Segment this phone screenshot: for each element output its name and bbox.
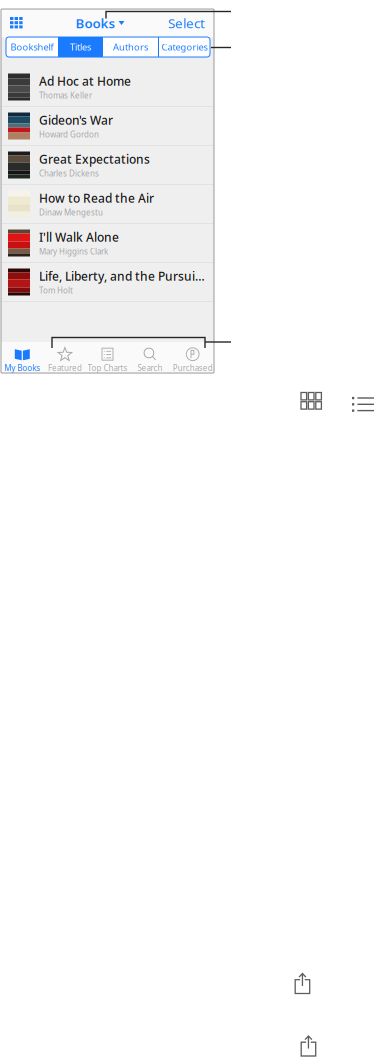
staticText: Life, Liberty, and the Pursuit of Happin… bbox=[39, 268, 206, 284]
button[interactable]: Shelf view bbox=[1, 12, 32, 34]
staticText: Mary Higgins Clark bbox=[39, 246, 108, 257]
button[interactable]: Purchased bbox=[171, 342, 214, 373]
button[interactable]: Search bbox=[129, 342, 171, 373]
staticText: Thomas Keller bbox=[39, 90, 92, 101]
staticText: Purchased bbox=[173, 363, 213, 373]
staticText: Authors bbox=[113, 41, 148, 53]
button[interactable]: Categories bbox=[159, 37, 210, 57]
staticText: Select bbox=[168, 14, 205, 32]
button[interactable]: Titles bbox=[59, 37, 102, 57]
button[interactable]: Books bbox=[75, 10, 124, 36]
button[interactable]: Bookshelf bbox=[6, 37, 58, 57]
button[interactable]: My Books bbox=[1, 342, 44, 373]
staticText: Categories bbox=[161, 41, 207, 53]
staticText: Great Expectations bbox=[39, 151, 150, 167]
staticText: Gideon's War bbox=[39, 112, 113, 128]
staticText: Titles bbox=[70, 41, 91, 53]
staticText: Tom Holt bbox=[39, 285, 73, 296]
staticText: Dinaw Mengestu bbox=[39, 207, 103, 218]
staticText: Bookshelf bbox=[10, 41, 53, 53]
staticText: Howard Gordon bbox=[39, 129, 99, 140]
staticText: Ad Hoc at Home bbox=[39, 73, 131, 89]
staticText: Search bbox=[138, 363, 163, 373]
staticText: I'll Walk Alone bbox=[39, 229, 119, 245]
staticText: How to Read the Air bbox=[39, 190, 154, 206]
staticText: Top Charts bbox=[87, 363, 127, 373]
button[interactable]: Select bbox=[168, 10, 214, 36]
staticText: Charles Dickens bbox=[39, 168, 99, 179]
button[interactable]: Featured bbox=[44, 342, 86, 373]
staticText: Featured bbox=[48, 363, 82, 373]
button[interactable]: Top Charts bbox=[86, 342, 129, 373]
staticText: Books bbox=[75, 14, 115, 32]
staticText: My Books bbox=[4, 363, 40, 373]
button[interactable]: Authors bbox=[103, 37, 158, 57]
